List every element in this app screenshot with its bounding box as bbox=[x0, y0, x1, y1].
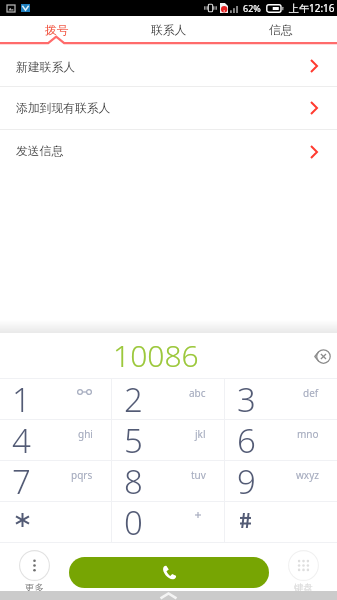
button[interactable] bbox=[0, 502, 111, 542]
staticText: ghi bbox=[78, 427, 93, 441]
button[interactable]: 5 bbox=[112, 420, 224, 460]
button[interactable]: 新建联系人 bbox=[0, 45, 337, 86]
button[interactable]: 9 bbox=[225, 461, 337, 501]
staticText: jkl bbox=[195, 427, 206, 441]
staticText: 更多 bbox=[25, 582, 44, 591]
button[interactable]: Keypad bbox=[277, 550, 329, 591]
button[interactable]: More bbox=[8, 550, 60, 591]
staticText: 10086 bbox=[113, 335, 199, 376]
staticText: 0 bbox=[124, 500, 143, 540]
staticText: mno bbox=[297, 427, 319, 441]
staticText: 发送信息 bbox=[16, 144, 64, 159]
staticText: tuv bbox=[191, 468, 206, 482]
button[interactable]: Backspace bbox=[310, 344, 334, 368]
staticText: 添加到现有联系人 bbox=[16, 101, 111, 116]
button[interactable]: 2 bbox=[112, 379, 224, 419]
staticText: 1 bbox=[12, 377, 31, 417]
button[interactable]: 信息 bbox=[225, 16, 337, 45]
staticText: 键盘 bbox=[294, 582, 313, 591]
staticText: 拨号 bbox=[45, 23, 69, 38]
button[interactable]: 1 bbox=[0, 379, 111, 419]
button[interactable]: 8 bbox=[112, 461, 224, 501]
staticText: 2 bbox=[124, 377, 143, 417]
staticText: 6 bbox=[237, 418, 256, 458]
button[interactable] bbox=[225, 502, 337, 542]
button[interactable]: 3 bbox=[225, 379, 337, 419]
staticText: def bbox=[303, 386, 319, 400]
staticText: wxyz bbox=[296, 468, 319, 482]
staticText: abc bbox=[189, 386, 206, 400]
button[interactable]: 4 bbox=[0, 420, 111, 460]
staticText: 62% bbox=[243, 2, 261, 14]
staticText: 信息 bbox=[269, 23, 293, 38]
staticText: 上午12:16 bbox=[289, 1, 335, 15]
button[interactable]: Call bbox=[69, 557, 269, 588]
button[interactable]: 拨号 bbox=[0, 16, 113, 45]
staticText: 联系人 bbox=[151, 23, 187, 38]
button[interactable]: 添加到现有联系人 bbox=[0, 87, 337, 129]
staticText: 7 bbox=[12, 459, 31, 499]
button[interactable]: 0 bbox=[112, 502, 224, 542]
staticText: 9 bbox=[237, 459, 256, 499]
staticText: 8 bbox=[124, 459, 143, 499]
staticText: 3 bbox=[237, 377, 256, 417]
button[interactable]: 6 bbox=[225, 420, 337, 460]
button[interactable]: 发送信息 bbox=[0, 130, 337, 174]
button[interactable]: 7 bbox=[0, 461, 111, 501]
staticText: 新建联系人 bbox=[16, 60, 75, 75]
staticText: 5 bbox=[124, 418, 143, 458]
staticText: pqrs bbox=[71, 468, 93, 482]
button[interactable]: 联系人 bbox=[113, 16, 225, 45]
staticText: 4 bbox=[12, 418, 31, 458]
